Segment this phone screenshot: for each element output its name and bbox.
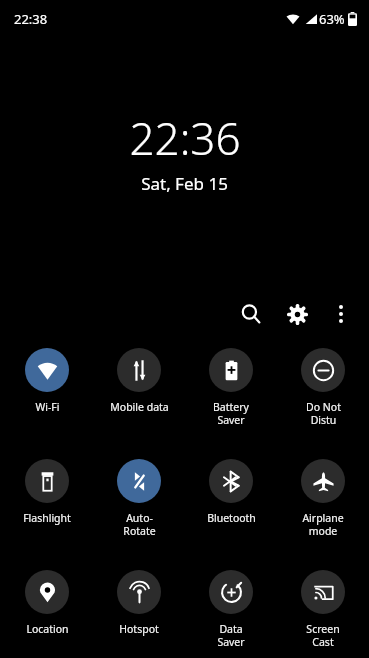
button[interactable]: Search xyxy=(231,294,271,334)
staticText: Mobile data xyxy=(110,400,169,414)
button[interactable]: Data Saver xyxy=(187,568,275,651)
staticText: 22:36 xyxy=(129,108,241,168)
staticText: Do Not Distu xyxy=(306,400,341,427)
staticText: Bluetooth xyxy=(207,511,256,525)
staticText: Flashlight xyxy=(23,511,71,525)
button[interactable]: Do Not Disturb xyxy=(279,346,367,429)
button[interactable]: Mobile data xyxy=(95,346,183,416)
staticText: Auto- Rotate xyxy=(123,511,156,538)
button[interactable]: Hotspot xyxy=(95,568,183,638)
button[interactable]: Screen Cast xyxy=(279,568,367,651)
staticText: Screen Cast xyxy=(306,622,340,649)
staticText: Airplane mode xyxy=(302,511,344,538)
staticText: 22:38 xyxy=(14,10,48,28)
button[interactable]: More options xyxy=(323,296,359,332)
button[interactable]: Airplane mode xyxy=(279,457,367,540)
button[interactable]: Bluetooth xyxy=(187,457,275,527)
button[interactable]: Wi-Fi xyxy=(3,346,91,416)
button[interactable]: Settings xyxy=(277,294,317,334)
button[interactable]: Auto Rotate xyxy=(95,457,183,540)
staticText: Hotspot xyxy=(119,622,159,636)
staticText: Location xyxy=(26,622,69,636)
staticText: Sat, Feb 15 xyxy=(141,172,228,195)
staticText: Data Saver xyxy=(217,622,245,649)
staticText: 63% xyxy=(319,10,345,28)
button[interactable]: Flashlight xyxy=(3,457,91,527)
button[interactable]: Battery Saver xyxy=(187,346,275,429)
button[interactable]: Location xyxy=(3,568,91,638)
staticText: Battery Saver xyxy=(213,400,249,427)
staticText: Wi-Fi xyxy=(35,400,60,414)
